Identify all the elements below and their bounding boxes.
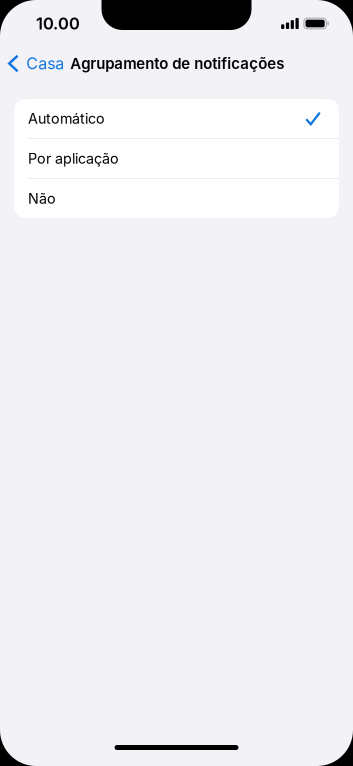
staticText: Não [28, 190, 56, 207]
button[interactable]: Automático [14, 99, 339, 138]
button[interactable]: Não [14, 179, 339, 218]
staticText: Casa [26, 54, 64, 73]
staticText: 10.00 [36, 14, 80, 33]
staticText: Automático [28, 110, 105, 127]
staticText: Agrupamento de notificações [70, 54, 284, 73]
button[interactable]: Por aplicação [14, 139, 339, 178]
button[interactable]: Casa [0, 52, 64, 75]
staticText: Por aplicação [28, 150, 119, 167]
